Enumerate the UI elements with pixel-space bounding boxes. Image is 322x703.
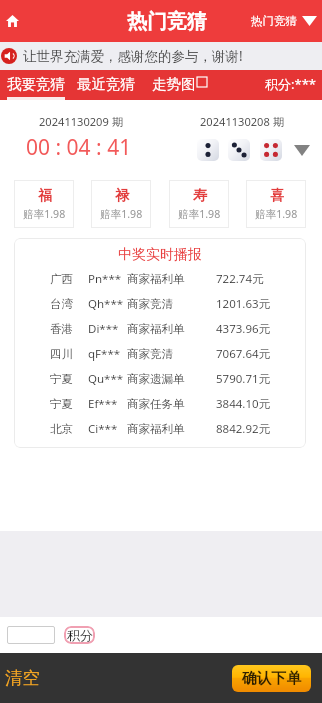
staticText: 北京	[50, 422, 88, 436]
staticText: 我要竞猜	[7, 75, 65, 93]
button[interactable]: 最近竞猜	[71, 70, 141, 100]
staticText: 中奖实时播报	[14, 246, 306, 264]
staticText: qF***	[88, 346, 127, 362]
staticText: Ef***	[88, 396, 127, 412]
staticText: 7067.64元	[216, 346, 288, 362]
staticText: 热门竞猜	[127, 9, 207, 34]
button[interactable]: 禄	[91, 180, 151, 228]
staticText: Ci***	[88, 421, 127, 437]
button[interactable]: 我要竞猜	[0, 70, 71, 100]
staticText: 20241130209 期	[39, 114, 123, 129]
staticText: 商家遗漏单	[127, 372, 216, 386]
button[interactable]: 确认下单	[232, 665, 311, 692]
button[interactable]: Amount input	[7, 626, 55, 644]
staticText: 赔率1.98	[100, 207, 143, 221]
button[interactable]: Home	[2, 11, 22, 31]
staticText: 赔率1.98	[255, 207, 298, 221]
staticText: 最近竞猜	[77, 75, 135, 93]
staticText: 5790.71元	[216, 371, 288, 387]
staticText: 走势图	[152, 75, 196, 93]
staticText: 赔率1.98	[23, 207, 66, 221]
staticText: 喜	[270, 187, 284, 205]
staticText: 商家福利单	[127, 272, 216, 286]
staticText: 3844.10元	[216, 396, 288, 412]
staticText: 台湾	[50, 297, 88, 311]
button[interactable]: 寿	[169, 180, 229, 228]
staticText: 商家任务单	[127, 397, 216, 411]
staticText: 积分:***	[265, 75, 316, 93]
staticText: 00 : 04 : 41	[26, 133, 132, 162]
staticText: 8842.92元	[216, 421, 288, 437]
staticText: 四川	[50, 347, 88, 361]
staticText: Qh***	[88, 296, 127, 312]
button[interactable]: 喜	[246, 180, 306, 228]
staticText: 香港	[50, 322, 88, 336]
staticText: 商家竞清	[127, 297, 216, 311]
staticText: 宁夏	[50, 372, 88, 386]
button[interactable]: 福	[14, 180, 74, 228]
staticText: Qu***	[88, 371, 127, 387]
staticText: 寿	[193, 187, 207, 205]
staticText: Di***	[88, 321, 127, 337]
staticText: 热门竞猜	[251, 14, 297, 28]
button[interactable]: 积分:***	[265, 70, 316, 100]
button[interactable]: 走势图	[145, 70, 210, 100]
staticText: 确认下单	[242, 669, 302, 688]
staticText: 赔率1.98	[178, 207, 221, 221]
staticText: Pn***	[88, 271, 127, 287]
button[interactable]: 热门竞猜	[251, 14, 317, 28]
staticText: 积分	[67, 627, 93, 643]
staticText: 广西	[50, 272, 88, 286]
button[interactable]: 积分	[64, 626, 95, 644]
staticText: 722.74元	[216, 271, 288, 287]
staticText: 4373.96元	[216, 321, 288, 337]
staticText: 福	[38, 187, 52, 205]
staticText: 宁夏	[50, 397, 88, 411]
button[interactable]: 清空	[5, 667, 40, 689]
staticText: 商家福利单	[127, 422, 216, 436]
staticText: 1201.63元	[216, 296, 288, 312]
staticText: 商家福利单	[127, 322, 216, 336]
staticText: 商家竞清	[127, 347, 216, 361]
staticText: 让世界充满爱，感谢您的参与，谢谢!	[23, 47, 243, 65]
staticText: 禄	[115, 187, 129, 205]
staticText: 20241130208 期	[200, 114, 284, 129]
